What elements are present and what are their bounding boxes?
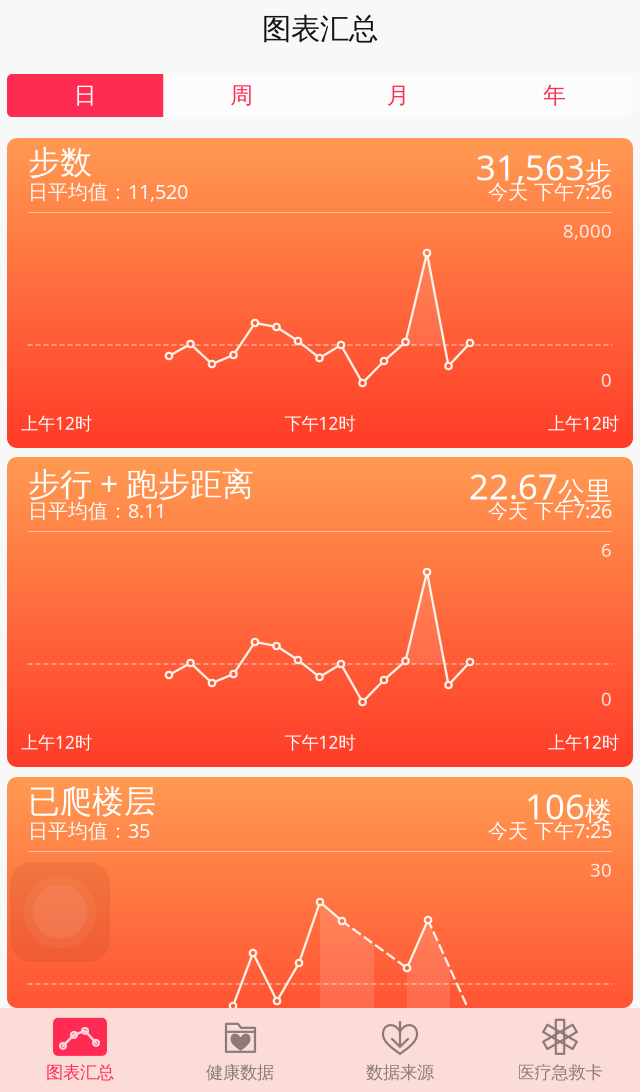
staticText: 下午12时 <box>284 730 355 753</box>
button[interactable]: 步行 + 跑步距离 <box>7 457 633 767</box>
button[interactable]: 年 <box>476 74 633 117</box>
staticText: 数据来源 <box>366 1062 434 1083</box>
staticText: 日平均值：8.11 <box>28 497 166 519</box>
staticText: 步数 <box>28 143 92 177</box>
staticText: 106楼 <box>525 783 612 817</box>
staticText: 日 <box>74 82 97 109</box>
staticText: 上午12时 <box>548 411 619 434</box>
staticText: 6 <box>601 537 612 557</box>
button[interactable]: 步数 <box>7 138 633 448</box>
staticText: 月 <box>387 82 410 109</box>
staticText: 已爬楼层 <box>28 782 156 816</box>
button[interactable]: 月 <box>320 74 476 117</box>
button[interactable]: 图表汇总 <box>0 1008 160 1092</box>
staticText: 上午12时 <box>21 411 92 434</box>
button[interactable]: 日 <box>7 74 163 117</box>
staticText: 上午12时 <box>548 730 619 753</box>
staticText: 0 <box>601 367 612 387</box>
staticText: 上午12时 <box>21 730 92 753</box>
staticText: 年 <box>543 82 566 109</box>
staticText: 健康数据 <box>206 1062 274 1083</box>
staticText: 步行 + 跑步距离 <box>28 462 254 496</box>
staticText: 图表汇总 <box>262 11 378 47</box>
staticText: 今天 下午7:26 <box>488 497 612 519</box>
staticText: 日平均值：11,520 <box>28 178 188 200</box>
staticText: 图表汇总 <box>46 1062 114 1083</box>
button[interactable]: 周 <box>163 74 320 117</box>
staticText: 下午12时 <box>284 411 355 434</box>
button[interactable]: 医疗急救卡 <box>480 1008 640 1092</box>
button[interactable]: 数据来源 <box>320 1008 480 1092</box>
staticText: 30 <box>590 857 612 877</box>
staticText: 周 <box>230 82 253 109</box>
staticText: 医疗急救卡 <box>517 1062 602 1083</box>
staticText: 8,000 <box>563 218 612 238</box>
button[interactable]: 已爬楼层 <box>7 777 633 1008</box>
staticText: 日平均值：35 <box>28 817 150 839</box>
staticText: 31,563步 <box>476 144 612 178</box>
button[interactable]: 健康数据 <box>160 1008 320 1092</box>
staticText: 今天 下午7:25 <box>488 817 612 839</box>
staticText: 0 <box>601 686 612 706</box>
staticText: 22.67公里 <box>469 463 612 497</box>
staticText: 今天 下午7:26 <box>488 178 612 200</box>
